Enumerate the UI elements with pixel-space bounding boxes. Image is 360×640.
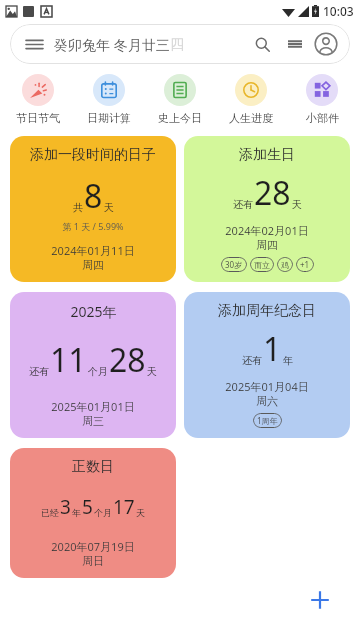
- button[interactable]: 正数日: [10, 448, 176, 578]
- staticText: 2024年01月11日: [51, 243, 135, 258]
- staticText: 周六: [256, 394, 278, 408]
- button[interactable]: Menu: [22, 32, 46, 56]
- staticText: 共: [73, 201, 83, 214]
- button[interactable]: 30岁: [221, 257, 247, 272]
- staticText: 天: [292, 198, 302, 211]
- staticText: 11: [50, 338, 87, 382]
- staticText: 2024年02月01日: [225, 223, 309, 238]
- staticText: 周三: [82, 414, 104, 428]
- staticText: 天: [147, 365, 157, 378]
- staticText: 2020年07月19日: [51, 539, 135, 554]
- button[interactable]: Menu: [10, 24, 350, 64]
- staticText: 17: [113, 494, 135, 520]
- button[interactable]: 节日节气: [5, 72, 71, 127]
- staticText: 天: [136, 507, 145, 518]
- button[interactable]: 1周年: [253, 413, 282, 428]
- staticText: 5: [82, 494, 93, 520]
- staticText: 1周年: [257, 415, 278, 426]
- staticText: 年: [72, 507, 81, 518]
- staticText: 节日节气: [16, 111, 60, 125]
- staticText: 28: [254, 171, 291, 215]
- button[interactable]: Sort: [281, 30, 309, 58]
- button[interactable]: 鸡: [277, 257, 293, 272]
- staticText: 四: [170, 36, 184, 54]
- staticText: 2025年01月01日: [51, 399, 135, 414]
- staticText: 添加周年纪念日: [218, 302, 316, 320]
- staticText: 3: [60, 494, 71, 520]
- staticText: 正数日: [72, 458, 114, 476]
- staticText: 日期计算: [87, 111, 131, 125]
- staticText: 还有: [233, 198, 253, 211]
- staticText: 周四: [82, 258, 104, 272]
- staticText: 个月: [94, 507, 112, 518]
- staticText: 2025年01月04日: [225, 379, 309, 394]
- staticText: 28: [109, 338, 146, 382]
- staticText: 还有: [29, 365, 49, 378]
- button[interactable]: 而立: [250, 257, 274, 272]
- button[interactable]: Account: [312, 30, 340, 58]
- staticText: +1: [300, 259, 310, 270]
- button[interactable]: +1: [296, 257, 314, 272]
- staticText: 已经: [41, 507, 59, 518]
- staticText: 30岁: [225, 259, 243, 270]
- staticText: 癸卯兔年 冬月廿三: [54, 35, 170, 54]
- staticText: 天: [104, 201, 114, 214]
- staticText: 年: [283, 354, 293, 367]
- staticText: 周日: [82, 554, 104, 568]
- button[interactable]: 添加一段时间的日子: [10, 136, 176, 282]
- button[interactable]: 日期计算: [76, 72, 142, 127]
- staticText: 人生进度: [229, 111, 273, 125]
- staticText: 小部件: [306, 111, 339, 125]
- staticText: 添加一段时间的日子: [30, 146, 156, 164]
- button[interactable]: 添加生日: [184, 136, 350, 282]
- staticText: 还有: [242, 354, 262, 367]
- staticText: 1: [263, 327, 282, 371]
- staticText: 8: [84, 174, 103, 218]
- staticText: 史上今日: [158, 111, 202, 125]
- staticText: 添加生日: [239, 146, 295, 164]
- staticText: 个月: [88, 365, 108, 378]
- staticText: 鸡: [281, 260, 289, 270]
- staticText: 周四: [256, 238, 278, 252]
- button[interactable]: 添加周年纪念日: [184, 292, 350, 438]
- button[interactable]: 小部件: [289, 72, 355, 127]
- button[interactable]: 史上今日: [147, 72, 213, 127]
- staticText: 而立: [254, 260, 270, 270]
- staticText: 10:03: [323, 3, 354, 19]
- staticText: 2025年: [70, 302, 117, 321]
- staticText: 第 1 天 / 5.99%: [62, 220, 124, 232]
- button[interactable]: 2025年: [10, 292, 176, 438]
- button[interactable]: Add: [296, 576, 344, 624]
- button[interactable]: Search: [247, 29, 277, 59]
- button[interactable]: 人生进度: [218, 72, 284, 127]
